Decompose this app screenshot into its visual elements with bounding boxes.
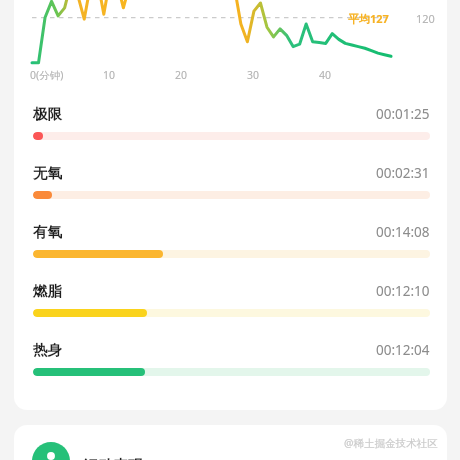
staticText: 00:02:31 — [376, 164, 430, 182]
button[interactable]: 热身 — [14, 341, 447, 400]
staticText: 40 — [319, 68, 332, 82]
staticText: 有氧 — [33, 223, 62, 241]
button[interactable]: 无氧 — [14, 164, 447, 223]
staticText: 00:12:10 — [376, 282, 430, 300]
staticText: 平均127 — [348, 11, 389, 26]
staticText: 30 — [247, 68, 260, 82]
staticText: 00:12:04 — [376, 341, 430, 359]
button[interactable]: 极限 — [14, 105, 447, 164]
staticText: 无氧 — [33, 164, 62, 182]
button[interactable]: 运动表现 — [14, 425, 447, 460]
button[interactable]: 有氧 — [14, 223, 447, 282]
staticText: 极限 — [33, 105, 62, 123]
staticText: 热身 — [33, 341, 62, 359]
staticText: 20 — [175, 68, 188, 82]
staticText: 10 — [103, 68, 116, 82]
staticText: 0(分钟) — [30, 68, 64, 82]
staticText: 燃脂 — [33, 282, 62, 300]
staticText: 运动表现 — [83, 457, 143, 460]
staticText: 120 — [416, 11, 435, 26]
staticText: 00:01:25 — [376, 105, 430, 123]
staticText: @稀土掘金技术社区 — [344, 436, 438, 450]
button[interactable]: 燃脂 — [14, 282, 447, 341]
staticText: 00:14:08 — [376, 223, 430, 241]
other: 运动表现 — [32, 442, 70, 460]
